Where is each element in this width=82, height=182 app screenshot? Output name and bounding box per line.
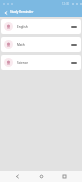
button[interactable]: English [1, 19, 81, 34]
button[interactable]: Back [12, 171, 23, 182]
button[interactable]: Recents [59, 171, 70, 182]
staticText: 12:30 [62, 2, 70, 6]
button[interactable]: Back [1, 8, 10, 17]
button[interactable]: Options [70, 41, 78, 49]
button[interactable]: Home [36, 171, 47, 182]
staticText: Science [17, 61, 29, 65]
button[interactable]: Science [1, 55, 81, 70]
staticText: Math [17, 43, 25, 47]
button[interactable]: Options [70, 23, 78, 31]
staticText: English [17, 25, 28, 29]
button[interactable]: Math [1, 37, 81, 52]
staticText: Study Reminder [10, 10, 34, 14]
button[interactable]: Options [70, 59, 78, 67]
